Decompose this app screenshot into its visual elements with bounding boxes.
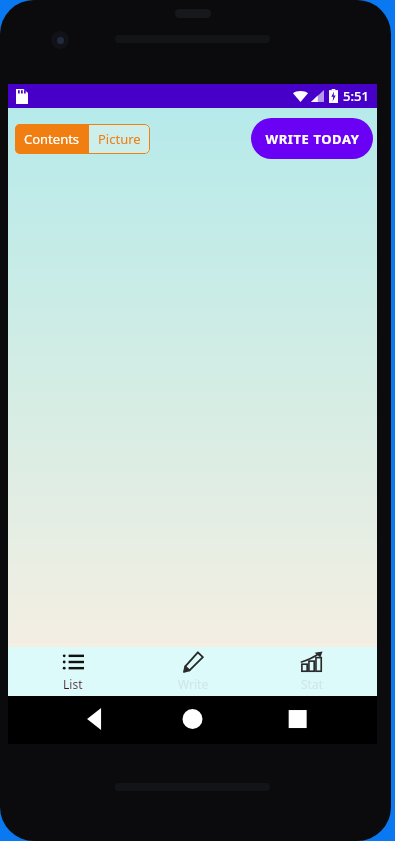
- button[interactable]: List: [18, 647, 128, 696]
- staticText: Stat: [301, 676, 323, 692]
- button[interactable]: Picture: [89, 124, 150, 154]
- staticText: List: [63, 676, 83, 692]
- staticText: WRITE TODAY: [265, 130, 360, 148]
- staticText: Write: [178, 676, 209, 692]
- button[interactable]: Write: [138, 647, 248, 696]
- button[interactable]: WRITE TODAY: [251, 118, 373, 159]
- staticText: Picture: [98, 130, 141, 148]
- button[interactable]: Stat: [257, 647, 367, 696]
- staticText: 5:51: [343, 87, 369, 105]
- button[interactable]: Contents: [15, 124, 89, 154]
- staticText: Contents: [24, 130, 80, 148]
